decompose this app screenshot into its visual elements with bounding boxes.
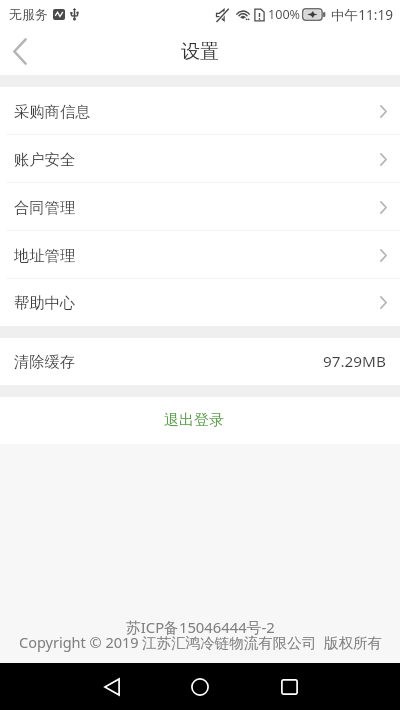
- staticText: 无服务: [9, 6, 48, 22]
- button[interactable]: Back: [0, 28, 44, 75]
- staticText: 退出登录: [164, 411, 224, 430]
- button[interactable]: 清除缓存: [0, 338, 400, 385]
- staticText: 清除缓存: [14, 352, 76, 371]
- staticText: 苏ICP备15046444号-2: [126, 617, 275, 637]
- button[interactable]: 帮助中心: [0, 279, 400, 326]
- staticText: Copyright © 2019 江苏汇鸿冷链物流有限公司 版权所有: [19, 632, 382, 652]
- button[interactable]: Recent apps: [254, 663, 324, 710]
- button[interactable]: Back: [77, 663, 147, 710]
- button[interactable]: 地址管理: [0, 231, 400, 279]
- staticText: 地址管理: [14, 246, 76, 265]
- button[interactable]: 采购商信息: [0, 87, 400, 135]
- staticText: 设置: [181, 40, 219, 64]
- staticText: 账户安全: [14, 150, 76, 169]
- button[interactable]: 合同管理: [0, 183, 400, 231]
- staticText: 合同管理: [14, 198, 76, 217]
- button[interactable]: 账户安全: [0, 135, 400, 183]
- button[interactable]: 退出登录: [0, 397, 400, 444]
- staticText: 帮助中心: [14, 293, 76, 312]
- staticText: 采购商信息: [14, 102, 91, 121]
- staticText: 97.29MB: [323, 351, 386, 372]
- button[interactable]: Home: [165, 663, 235, 710]
- staticText: 100%: [268, 6, 301, 23]
- staticText: 中午11:19: [331, 5, 393, 24]
